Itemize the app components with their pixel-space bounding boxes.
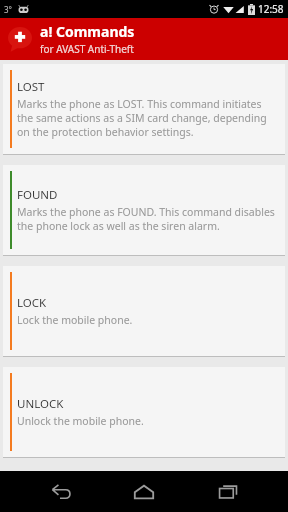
staticText: 3°: [4, 4, 12, 15]
button[interactable]: Back: [38, 471, 84, 512]
button[interactable]: LOCK: [3, 266, 285, 357]
staticText: a! Commands: [40, 22, 135, 41]
staticText: 12:58: [258, 2, 284, 16]
staticText: FOUND: [17, 187, 58, 203]
other: avast! Commands logo: [7, 26, 33, 52]
staticText: for AVAST Anti-Theft: [40, 42, 134, 56]
button[interactable]: Recent apps: [205, 471, 251, 512]
button[interactable]: avast! Commands logo: [0, 18, 288, 60]
staticText: LOST: [17, 79, 45, 95]
staticText: Marks the phone as FOUND. This command d…: [17, 205, 275, 233]
button[interactable]: FOUND: [3, 165, 285, 256]
staticText: Lock the mobile phone.: [17, 313, 133, 327]
staticText: LOCK: [17, 295, 47, 311]
staticText: UNLOCK: [17, 396, 64, 412]
button[interactable]: Home: [121, 471, 167, 512]
staticText: Unlock the mobile phone.: [17, 414, 144, 428]
staticText: Marks the phone as LOST. This command in…: [17, 97, 275, 139]
button[interactable]: UNLOCK: [3, 367, 285, 458]
button[interactable]: LOST: [3, 64, 285, 155]
